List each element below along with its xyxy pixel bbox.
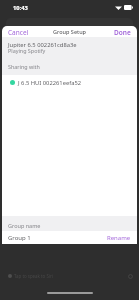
- staticText: Tap to speak to Siri: [14, 273, 53, 279]
- button[interactable]: Cancel: [2, 26, 35, 37]
- button[interactable]: J 6.5 HUI 002261eefa52: [2, 75, 137, 90]
- staticText: Group Setup: [53, 28, 87, 35]
- staticText: Done: [114, 28, 131, 35]
- staticText: Cancel: [8, 28, 29, 35]
- button[interactable]: Group 1: [2, 231, 137, 244]
- staticText: Rename: [107, 234, 131, 242]
- staticText: Jupiter 6.5 002261cd8a3e: [8, 41, 77, 49]
- staticText: Playing Spotify: [8, 47, 46, 54]
- staticText: Sharing with: [8, 63, 40, 70]
- staticText: 10:43: [13, 4, 28, 12]
- staticText: Group name: [8, 222, 41, 229]
- other: Search: [128, 274, 133, 279]
- staticText: J 6.5 HUI 002261eefa52: [18, 79, 82, 87]
- staticText: Group 1: [8, 234, 31, 242]
- button[interactable]: Tap to speak to Siri: [0, 270, 139, 282]
- button[interactable]: Done: [108, 26, 137, 37]
